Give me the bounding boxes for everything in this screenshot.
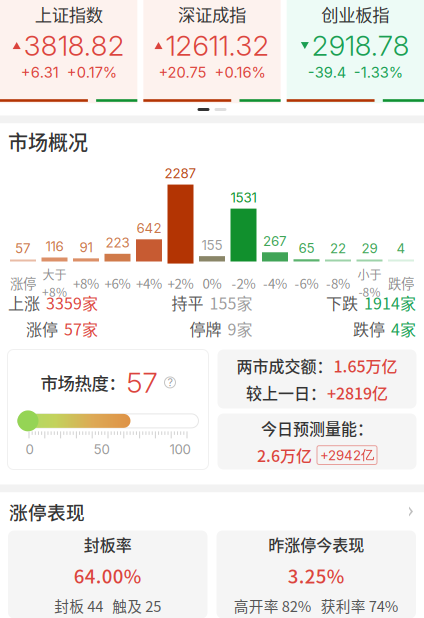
staticText: 3818.82 (24, 29, 125, 62)
staticText: 12611.32 (165, 29, 269, 62)
staticText: 100 (169, 441, 190, 457)
staticText: 封板率 (84, 533, 132, 556)
staticText: -2% (231, 273, 255, 292)
staticText: 50 (93, 441, 109, 457)
staticText: +2942亿 (320, 447, 374, 463)
staticText: 跌停 (353, 317, 385, 340)
staticText: 64.00% (74, 562, 142, 589)
staticText: 642 (136, 220, 161, 236)
staticText: 223 (105, 235, 129, 251)
staticText: +8% (42, 283, 67, 300)
staticText: 22 (330, 240, 346, 256)
staticText: 创业板指 (321, 1, 389, 27)
staticText: 今日预测量能： (261, 416, 373, 439)
staticText: 57家 (64, 317, 98, 340)
staticText: 封板 44 (54, 595, 103, 616)
staticText: +6% (104, 273, 130, 292)
staticText: -8% (326, 273, 350, 292)
staticText: +0.16% (214, 63, 265, 81)
staticText: 4 (396, 240, 405, 256)
staticText: 57 (15, 240, 31, 256)
staticText: +4% (136, 273, 162, 292)
staticText: 小于 (357, 265, 381, 283)
staticText: 上涨 (8, 291, 40, 314)
staticText: 持平 (171, 291, 203, 314)
staticText: -6% (294, 273, 318, 292)
staticText: 91 (79, 239, 92, 255)
button[interactable]: 涨停表现 (0, 492, 424, 530)
staticText: 市场概况 (8, 127, 88, 156)
staticText: 0% (202, 273, 221, 292)
staticText: 涨停 (26, 317, 58, 340)
staticText: +2% (167, 273, 193, 292)
staticText: 获利率 74% (321, 595, 399, 616)
staticText: +2819亿 (327, 381, 388, 404)
staticText: 3.25% (288, 562, 345, 589)
staticText: -8% (358, 283, 380, 300)
staticText: 触及 25 (112, 595, 161, 616)
staticText: 下跌 (326, 291, 358, 314)
staticText: 0 (25, 441, 33, 457)
staticText: 1531 (230, 189, 256, 206)
staticText: 涨停 (10, 273, 36, 292)
staticText: 2.6万亿 (257, 443, 312, 467)
button[interactable]: 深证成指 (143, 0, 281, 103)
staticText: 65 (298, 240, 314, 256)
staticText: 停牌 (189, 317, 221, 340)
staticText: +6.31 (21, 63, 59, 81)
staticText: 155家 (209, 291, 252, 314)
staticText: 2287 (164, 165, 196, 181)
staticText: 29 (361, 240, 377, 256)
staticText: -1.33% (354, 63, 403, 81)
staticText: +0.17% (67, 63, 117, 81)
staticText: 155 (201, 237, 222, 253)
staticText: 9家 (227, 317, 252, 340)
staticText: 高开率 82% (234, 595, 312, 616)
staticText: 上证指数 (35, 1, 103, 27)
staticText: ? (167, 376, 172, 389)
staticText: 两市成交额： (236, 354, 332, 377)
staticText: -39.4 (308, 63, 346, 81)
staticText: 1.65万亿 (333, 354, 397, 377)
staticText: 深证成指 (178, 1, 246, 27)
staticText: 市场热度： (40, 370, 125, 395)
staticText: -4% (263, 273, 287, 292)
staticText: 大于 (42, 265, 66, 283)
staticText: 涨停表现 (9, 498, 85, 525)
staticText: +20.75 (158, 63, 206, 81)
button[interactable]: 创业板指 (287, 0, 424, 103)
staticText: 较上一日： (246, 381, 326, 404)
staticText: 4家 (391, 317, 416, 340)
staticText: 昨涨停今表现 (268, 533, 364, 556)
staticText: 2918.78 (312, 29, 410, 62)
staticText: 3359家 (46, 291, 98, 314)
staticText: 1914家 (364, 291, 416, 314)
button[interactable]: 上证指数 (0, 0, 137, 103)
staticText: 跌停 (388, 273, 414, 292)
staticText: 267 (263, 233, 287, 249)
staticText: +8% (73, 273, 99, 292)
staticText: 116 (45, 238, 63, 254)
staticText: 57 (126, 365, 157, 399)
